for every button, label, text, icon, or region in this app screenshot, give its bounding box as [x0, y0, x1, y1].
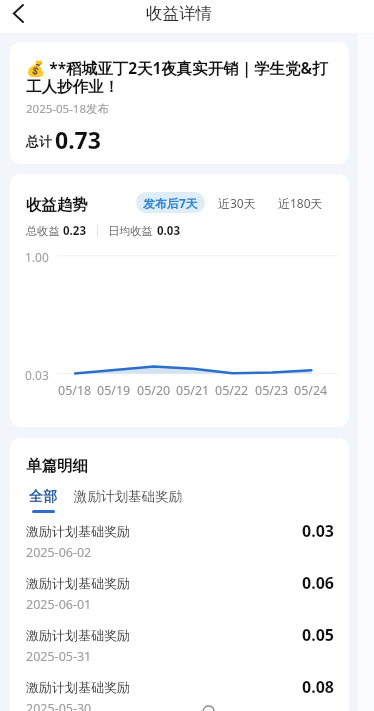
staticText: 0.03 — [25, 367, 49, 383]
staticText: 收益趋势 — [26, 195, 88, 215]
staticText: 0.03 — [157, 223, 180, 239]
staticText: 05/24 — [294, 382, 328, 399]
staticText: 收益详情 — [146, 3, 212, 24]
staticText: 激励计划基础奖励 — [26, 627, 130, 643]
staticText: 激励计划基础奖励 — [26, 679, 130, 695]
staticText: 总计 — [26, 133, 52, 149]
staticText: 0.23 — [63, 223, 86, 239]
staticText: 发布后7天 — [143, 195, 198, 211]
staticText: 0.06 — [302, 572, 334, 594]
staticText: 05/20 — [137, 382, 171, 399]
staticText: 2025-05-31 — [26, 648, 92, 665]
staticText: 单篇明细 — [26, 456, 88, 476]
staticText: 2025-06-02 — [26, 544, 92, 561]
staticText: 05/19 — [97, 382, 131, 399]
staticText: 激励计划基础奖励 — [26, 523, 130, 539]
staticText: 05/18 — [58, 382, 92, 399]
staticText: 1.00 — [25, 249, 49, 265]
button[interactable]: 激励计划基础奖励 — [10, 567, 349, 619]
staticText: 近30天 — [218, 195, 256, 211]
staticText: 0.03 — [302, 520, 334, 542]
staticText: 总收益 — [26, 224, 60, 238]
button[interactable]: 激励计划基础奖励 — [74, 488, 182, 505]
staticText: 激励计划基础奖励 — [26, 575, 130, 591]
button[interactable]: 激励计划基础奖励 — [10, 671, 349, 711]
staticText: 0.08 — [302, 676, 334, 698]
staticText: 近180天 — [278, 195, 323, 211]
button[interactable]: 发布后7天 — [136, 192, 205, 213]
button[interactable]: Back — [3, 0, 33, 28]
staticText: 2025-05-18发布 — [26, 101, 110, 117]
staticText: 💰 **稻城亚丁2天1夜真实开销｜学生党&打工人抄作业！ — [26, 57, 338, 97]
staticText: 0.73 — [55, 124, 101, 155]
button[interactable]: 激励计划基础奖励 — [10, 515, 349, 567]
staticText: 05/21 — [176, 382, 210, 399]
staticText: 日均收益 — [108, 224, 153, 238]
staticText: 全部 — [29, 488, 57, 506]
staticText: 05/22 — [215, 382, 249, 399]
staticText: 激励计划基础奖励 — [74, 488, 182, 505]
button[interactable]: 近180天 — [270, 190, 331, 216]
staticText: 0.05 — [302, 624, 334, 646]
button[interactable]: 激励计划基础奖励 — [10, 619, 349, 671]
staticText: 2025-06-01 — [26, 596, 92, 613]
staticText: 2025-05-30 — [26, 700, 92, 711]
button[interactable]: 近30天 — [210, 190, 264, 216]
staticText: 05/23 — [255, 382, 289, 399]
button[interactable]: 全部 — [26, 488, 60, 513]
